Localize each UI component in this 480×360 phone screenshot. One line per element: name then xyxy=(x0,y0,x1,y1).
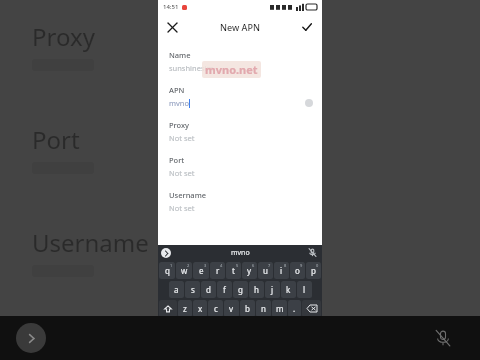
staticText: 7 xyxy=(268,263,271,268)
staticText: n xyxy=(261,303,266,314)
staticText: Username xyxy=(169,190,207,200)
staticText: b xyxy=(245,303,250,314)
button[interactable]: 2 xyxy=(176,262,192,279)
staticText: Proxy xyxy=(169,120,190,130)
staticText: u xyxy=(263,265,268,276)
staticText: l xyxy=(303,284,306,295)
staticText: r xyxy=(216,265,220,276)
staticText: h xyxy=(254,284,259,295)
staticText: 1 xyxy=(170,263,173,268)
staticText: Not set xyxy=(169,168,195,178)
staticText: 14:51 xyxy=(163,3,179,11)
staticText: APN xyxy=(169,85,185,95)
button[interactable]: c xyxy=(208,300,223,317)
staticText: y xyxy=(247,265,252,276)
button[interactable]: Clear xyxy=(305,99,313,107)
staticText: mvno xyxy=(169,98,189,108)
button[interactable]: z xyxy=(178,300,192,317)
button[interactable]: Port xyxy=(169,151,313,186)
button[interactable]: Next xyxy=(16,323,46,353)
button[interactable]: v xyxy=(224,300,239,317)
staticText: v xyxy=(229,303,234,314)
button[interactable]: 1 xyxy=(159,262,175,279)
staticText: mvno.net xyxy=(205,62,258,77)
button[interactable]: Expand toolbar xyxy=(161,248,171,258)
staticText: 2 xyxy=(187,263,190,268)
button[interactable]: 6 xyxy=(242,262,257,279)
button[interactable]: Username xyxy=(169,186,313,221)
button[interactable]: h xyxy=(249,281,264,298)
button[interactable]: Voice input off xyxy=(307,247,318,258)
button[interactable]: d xyxy=(201,281,216,298)
button[interactable]: l xyxy=(297,281,312,298)
button[interactable]: x xyxy=(193,300,207,317)
button[interactable]: 9 xyxy=(290,262,305,279)
button[interactable]: Save xyxy=(297,17,317,37)
button[interactable]: 4 xyxy=(210,262,225,279)
staticText: . xyxy=(293,303,296,314)
staticText: x xyxy=(198,303,203,314)
button[interactable]: j xyxy=(265,281,280,298)
button[interactable]: 8 xyxy=(274,262,289,279)
staticText: Proxy xyxy=(32,20,95,53)
staticText: m xyxy=(276,303,284,314)
staticText: Port xyxy=(169,155,185,165)
staticText: z xyxy=(183,303,187,314)
staticText: q xyxy=(165,265,170,276)
staticText: t xyxy=(232,265,235,276)
staticText: New APN xyxy=(220,21,260,33)
button[interactable]: g xyxy=(233,281,248,298)
staticText: d xyxy=(206,284,211,295)
button[interactable]: f xyxy=(217,281,232,298)
button[interactable]: mvno xyxy=(231,248,250,258)
button[interactable]: Backspace xyxy=(302,300,321,317)
staticText: Username xyxy=(32,226,149,259)
button[interactable]: 0 xyxy=(306,262,321,279)
staticText: k xyxy=(286,284,291,295)
staticText: e xyxy=(199,265,204,276)
staticText: Port xyxy=(32,123,80,156)
staticText: 8 xyxy=(284,263,287,268)
staticText: Not set xyxy=(169,203,195,213)
button[interactable]: 3 xyxy=(193,262,209,279)
staticText: 3 xyxy=(204,263,207,268)
button[interactable]: m xyxy=(272,300,287,317)
staticText: f xyxy=(223,284,226,295)
button[interactable]: APN xyxy=(169,81,313,116)
staticText: c xyxy=(214,303,218,314)
staticText: 6 xyxy=(252,263,255,268)
button[interactable]: k xyxy=(281,281,296,298)
button[interactable]: n xyxy=(256,300,271,317)
staticText: 0 xyxy=(316,263,319,268)
staticText: 4 xyxy=(220,263,223,268)
button[interactable]: . xyxy=(288,300,301,317)
button[interactable]: Shift xyxy=(159,300,177,317)
staticText: 9 xyxy=(300,263,303,268)
staticText: Not set xyxy=(169,133,195,143)
button[interactable]: s xyxy=(185,281,200,298)
staticText: 5 xyxy=(236,263,239,268)
button[interactable]: 5 xyxy=(226,262,241,279)
staticText: j xyxy=(271,284,274,295)
staticText: s xyxy=(191,284,195,295)
button[interactable]: 7 xyxy=(258,262,273,279)
button[interactable]: a xyxy=(169,281,184,298)
staticText: p xyxy=(311,265,316,276)
button[interactable]: Proxy xyxy=(169,116,313,151)
button[interactable]: b xyxy=(240,300,255,317)
staticText: sunshinesim xyxy=(169,63,214,73)
staticText: i xyxy=(280,265,283,276)
button[interactable]: Name xyxy=(169,46,313,81)
button[interactable]: Unmute xyxy=(428,323,458,353)
button[interactable]: Close xyxy=(162,17,182,37)
staticText: Name xyxy=(169,50,191,60)
